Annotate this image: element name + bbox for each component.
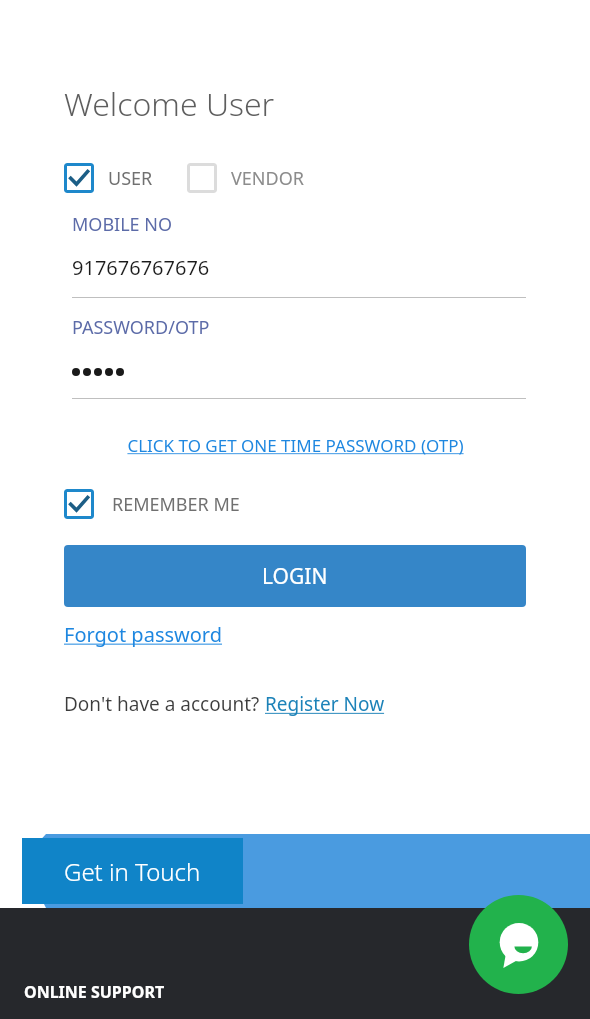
- button[interactable]: 917676767676: [72, 254, 526, 281]
- button[interactable]: VENDOR: [187, 163, 304, 193]
- staticText: Get in Touch: [64, 855, 201, 888]
- button[interactable]: Open chat support: [469, 895, 568, 994]
- button[interactable]: Get in Touch: [22, 838, 243, 904]
- staticText: VENDOR: [231, 166, 304, 191]
- button[interactable]: Register Now: [265, 691, 385, 717]
- staticText: MOBILE NO: [72, 212, 173, 237]
- button[interactable]: LOGIN: [64, 545, 526, 607]
- staticText: PASSWORD/OTP: [72, 315, 210, 340]
- staticText: 917676767676: [72, 254, 210, 281]
- button[interactable]: USER: [64, 163, 153, 193]
- staticText: Don't have a account?: [64, 691, 265, 717]
- staticText: ONLINE SUPPORT: [24, 981, 165, 1003]
- staticText: CLICK TO GET ONE TIME PASSWORD (OTP): [127, 434, 464, 457]
- staticText: Welcome User: [64, 82, 275, 126]
- button[interactable]: [72, 356, 526, 382]
- button[interactable]: CLICK TO GET ONE TIME PASSWORD (OTP): [123, 432, 468, 459]
- button[interactable]: Forgot password: [64, 621, 223, 648]
- staticText: Forgot password: [64, 621, 223, 648]
- staticText: LOGIN: [262, 562, 328, 591]
- button[interactable]: REMEMBER ME: [64, 489, 240, 519]
- staticText: Register Now: [265, 691, 385, 717]
- staticText: USER: [108, 166, 153, 191]
- staticText: REMEMBER ME: [112, 492, 240, 517]
